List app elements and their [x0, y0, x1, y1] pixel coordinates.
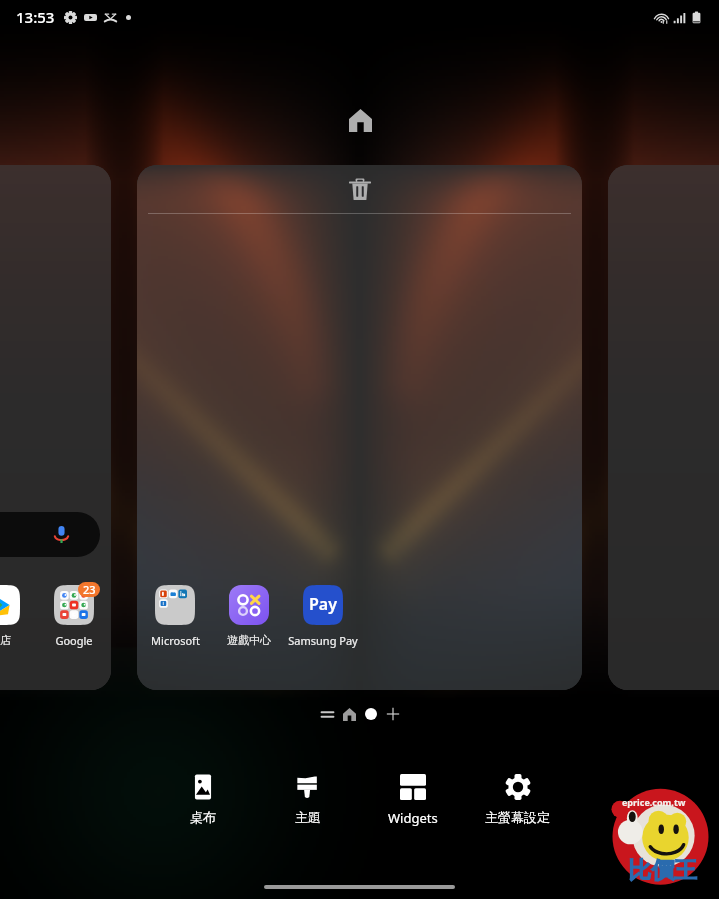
button[interactable]: Main home page: [338, 703, 360, 725]
staticText: 13:53: [16, 7, 55, 27]
button[interactable]: App list page: [316, 703, 338, 725]
button[interactable]: 主螢幕設定: [465, 770, 570, 829]
staticText: Google: [55, 633, 93, 648]
button[interactable]: 桌布: [150, 770, 255, 829]
staticText: Widgets: [388, 809, 438, 827]
button[interactable]: 商店: [0, 585, 37, 647]
button[interactable]: Home screen: [343, 103, 377, 137]
button[interactable]: Widgets: [360, 770, 465, 831]
button[interactable]: Current page: [360, 703, 382, 725]
button[interactable]: Search: [0, 512, 100, 557]
button[interactable]: Microsoft: [138, 585, 212, 648]
button[interactable]: 主題: [255, 770, 360, 829]
button[interactable]: [608, 165, 719, 690]
button[interactable]: 遊戲中心: [212, 585, 286, 647]
staticText: Pay: [309, 593, 337, 615]
button[interactable]: Google: [37, 585, 111, 648]
staticText: 主螢幕設定: [485, 809, 550, 825]
button[interactable]: Remove page: [137, 165, 582, 690]
staticText: eprice.com.tw: [622, 796, 686, 808]
staticText: 比價王: [628, 856, 697, 885]
staticText: 商店: [0, 633, 11, 647]
staticText: 桌布: [190, 809, 216, 825]
staticText: 遊戲中心: [227, 633, 271, 647]
button[interactable]: Search: [0, 165, 111, 690]
staticText: Microsoft: [151, 633, 200, 648]
button[interactable]: Pay: [286, 585, 360, 648]
staticText: Samsung Pay: [288, 633, 358, 648]
staticText: 主題: [295, 809, 321, 825]
button[interactable]: Add page: [382, 703, 404, 725]
staticText: 23: [83, 582, 96, 597]
button[interactable]: Remove page: [335, 165, 384, 213]
